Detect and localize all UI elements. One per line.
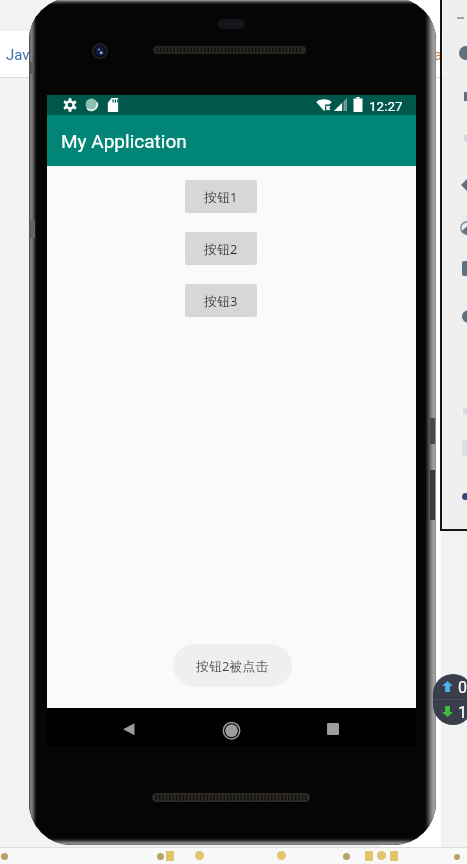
staticText: 按钮2被点击	[196, 657, 269, 675]
button[interactable]: Home	[218, 716, 244, 742]
staticText: 按钮2	[204, 240, 238, 258]
button[interactable]: Network speed	[433, 674, 467, 725]
staticText: Java	[6, 46, 38, 64]
button[interactable]: 按钮2	[185, 232, 257, 265]
button[interactable]: 按钮1	[185, 180, 257, 213]
staticText: a.	[434, 46, 447, 64]
staticText: 按钮1	[204, 188, 238, 206]
button[interactable]: Back	[115, 717, 141, 743]
staticText: My Application	[61, 130, 187, 152]
button[interactable]: 按钮3	[185, 284, 257, 317]
staticText: 12:27	[369, 98, 403, 114]
staticText: 1	[458, 703, 467, 722]
staticText: 0	[458, 678, 467, 697]
button[interactable]: Recent apps	[321, 718, 343, 740]
staticText: 按钮3	[204, 292, 238, 310]
